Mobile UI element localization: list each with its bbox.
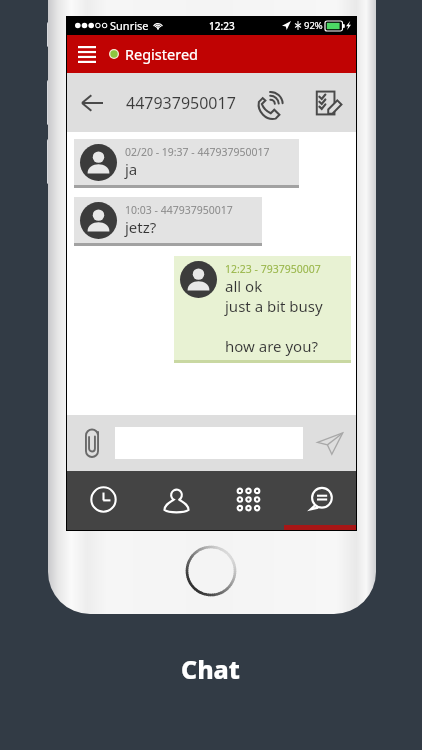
staticText: jetz? bbox=[125, 217, 157, 237]
staticText: Sunrise bbox=[110, 18, 149, 33]
button[interactable]: Send bbox=[315, 428, 345, 458]
staticText: how are you? bbox=[225, 336, 318, 356]
staticText: 447937950017 bbox=[126, 92, 236, 114]
staticText: 12:23 bbox=[209, 19, 235, 33]
staticText: 10:03 - 447937950017 bbox=[125, 203, 233, 217]
button[interactable]: Edit list bbox=[310, 84, 348, 122]
button[interactable]: Recent bbox=[67, 471, 140, 530]
button[interactable]: Call bbox=[251, 84, 289, 122]
staticText: ja bbox=[125, 159, 138, 179]
staticText: all ok bbox=[225, 276, 263, 296]
button[interactable]: Attach bbox=[78, 429, 106, 457]
staticText: just a bit busy bbox=[225, 296, 323, 316]
button[interactable]: Contacts bbox=[140, 471, 212, 530]
staticText: 92% bbox=[304, 19, 323, 32]
button[interactable]: 12:23 - 7937950007 bbox=[180, 261, 341, 356]
staticText: Chat bbox=[181, 652, 241, 686]
button[interactable]: Back bbox=[75, 86, 109, 120]
staticText: 02/20 - 19:37 - 447937950017 bbox=[125, 145, 270, 159]
button[interactable]: Chat bbox=[284, 471, 356, 530]
button[interactable]: Keypad bbox=[212, 471, 284, 530]
staticText: Registered bbox=[125, 44, 199, 64]
button[interactable]: Menu bbox=[72, 39, 102, 69]
staticText: 12:23 - 7937950007 bbox=[225, 262, 321, 276]
button[interactable]: 10:03 - 447937950017 bbox=[80, 202, 233, 239]
button[interactable]: Home bbox=[185, 545, 237, 597]
button[interactable]: 02/20 - 19:37 - 447937950017 bbox=[80, 144, 270, 181]
